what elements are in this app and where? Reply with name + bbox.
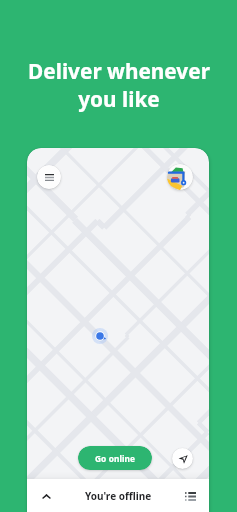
staticText: Go online xyxy=(95,453,136,464)
button[interactable]: Menu xyxy=(37,165,61,189)
button[interactable]: My location xyxy=(172,448,193,469)
staticText: Deliver whenever you like xyxy=(28,57,210,113)
button[interactable]: Profile xyxy=(167,164,193,190)
button[interactable]: Go online xyxy=(78,446,152,470)
button[interactable]: Expand xyxy=(35,485,57,507)
staticText: You're offline xyxy=(85,489,152,503)
button[interactable]: Order list xyxy=(179,485,201,507)
